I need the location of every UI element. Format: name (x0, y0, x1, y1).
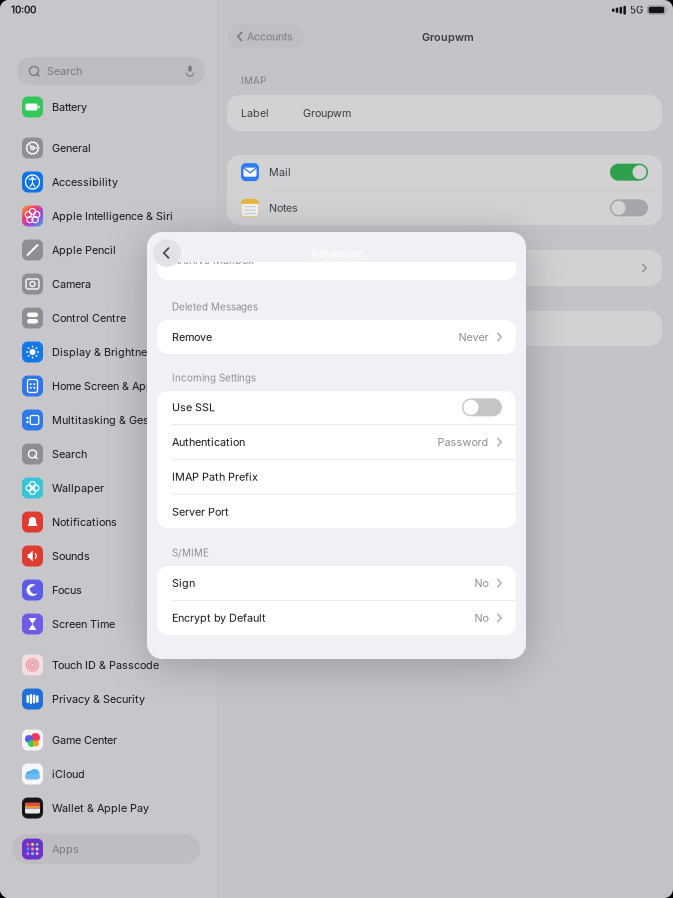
staticText: Multitasking & Gestures (52, 413, 175, 427)
staticText: S/MIME (172, 547, 209, 559)
button[interactable]: Sign (157, 566, 516, 600)
staticText: Notifications (52, 515, 117, 529)
button[interactable]: Accessibility (12, 167, 200, 197)
staticText: Screen Time (52, 617, 115, 631)
staticText: IMAP Path Prefix (172, 470, 258, 483)
staticText: Touch ID & Passcode (52, 658, 159, 672)
staticText: Incoming Settings (172, 372, 256, 384)
button[interactable]: Screen Time (12, 609, 200, 639)
staticText: General (52, 141, 91, 155)
staticText: iCloud (52, 767, 85, 781)
staticText: Accessibility (52, 175, 118, 189)
button[interactable]: Control Centre (12, 303, 200, 333)
staticText: Home Screen & App Library (52, 379, 185, 393)
button[interactable]: General (12, 133, 200, 163)
button[interactable]: Encrypt by Default (157, 601, 516, 635)
button[interactable]: Back (153, 239, 181, 267)
button[interactable]: Apps (12, 834, 200, 864)
staticText: Display & Brightness (52, 345, 159, 359)
staticText: Wallpaper (52, 481, 104, 495)
staticText: Groupwm (422, 30, 474, 44)
button[interactable]: Multitasking & Gestures (12, 405, 200, 435)
staticText: 10:00 (11, 4, 36, 16)
button[interactable]: Accounts (228, 24, 304, 49)
staticText: Privacy & Security (52, 692, 145, 706)
button[interactable]: Notifications (12, 507, 200, 537)
staticText: Search (47, 64, 82, 78)
button[interactable]: Apple Intelligence & Siri (12, 201, 200, 231)
staticText: Accounts (247, 30, 293, 43)
button[interactable]: Game Center (12, 725, 200, 755)
button[interactable]: Touch ID & Passcode (12, 650, 200, 680)
button[interactable]: Home Screen & App Library (12, 371, 200, 401)
staticText: No (474, 611, 488, 624)
button[interactable]: Focus (12, 575, 200, 605)
staticText: Remove (172, 330, 212, 344)
button[interactable]: Display & Brightness (12, 337, 200, 367)
button[interactable]: Authentication (157, 425, 516, 459)
staticText: Server Port (172, 505, 229, 518)
button[interactable]: Camera (12, 269, 200, 299)
staticText: Password (437, 436, 488, 449)
staticText: Wallet & Apple Pay (52, 801, 149, 815)
staticText: No (474, 577, 488, 590)
staticText: Battery (52, 100, 87, 114)
staticText: Sign (172, 577, 195, 590)
button[interactable]: Sounds (12, 541, 200, 571)
staticText: Control Centre (52, 311, 126, 325)
staticText: Never (458, 330, 488, 344)
staticText: Advanced (310, 246, 363, 260)
staticText: Encrypt by Default (172, 611, 266, 624)
staticText: Apple Intelligence & Siri (52, 209, 173, 223)
button[interactable]: Use SSL (157, 390, 516, 424)
staticText: Use SSL (172, 401, 215, 414)
staticText: Authentication (172, 436, 245, 449)
staticText: Apps (52, 842, 79, 856)
button[interactable]: Privacy & Security (12, 684, 200, 714)
staticText: Mail (269, 166, 291, 179)
staticText: Notes (269, 201, 298, 214)
staticText: Label (241, 106, 269, 119)
button[interactable]: IMAP Path Prefix (157, 460, 516, 494)
button[interactable]: Wallet & Apple Pay (12, 793, 200, 823)
staticText: Deleted Messages (172, 301, 258, 313)
button[interactable]: Search (17, 57, 205, 85)
staticText: Camera (52, 277, 91, 291)
staticText: Focus (52, 583, 82, 597)
staticText: 5G (630, 4, 643, 16)
button[interactable]: Wallpaper (12, 473, 200, 503)
staticText: Game Center (52, 733, 117, 747)
button[interactable]: Search (12, 439, 200, 469)
staticText: Apple Pencil (52, 243, 116, 257)
button[interactable]: iCloud (12, 759, 200, 789)
button[interactable]: Server Port (157, 495, 516, 529)
staticText: Groupwm (303, 106, 351, 119)
staticText: IMAP (241, 75, 266, 87)
staticText: Archive Mailbox (172, 253, 254, 267)
staticText: Sounds (52, 549, 90, 563)
button[interactable]: Apple Pencil (12, 235, 200, 265)
staticText: Search (52, 447, 87, 461)
button[interactable]: Battery (12, 92, 200, 122)
button[interactable]: Remove (157, 320, 516, 354)
